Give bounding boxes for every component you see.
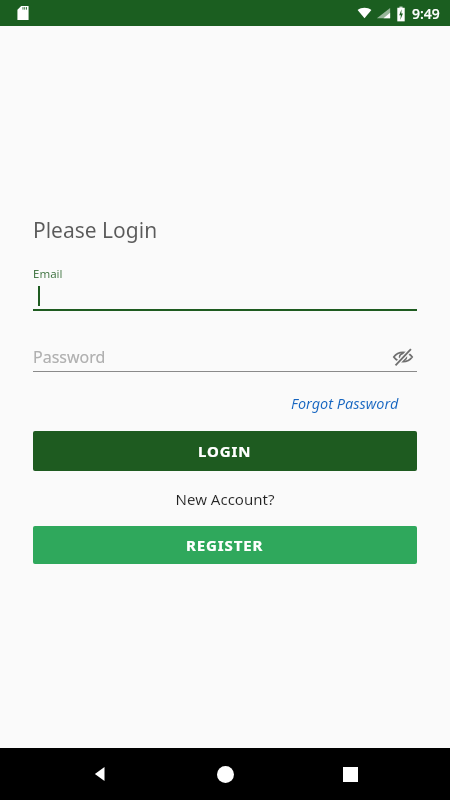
button[interactable]: Show password [389, 343, 417, 371]
staticText: 9:49 [412, 4, 440, 23]
button[interactable]: Forgot Password [291, 393, 399, 413]
button[interactable]: Recents [333, 757, 367, 791]
staticText: Password [33, 346, 106, 368]
staticText: Forgot Password [291, 393, 399, 413]
button[interactable]: Back [83, 757, 117, 791]
button[interactable]: REGISTER [33, 526, 417, 564]
button[interactable]: Email [33, 266, 417, 311]
button[interactable]: Home [207, 756, 243, 792]
button[interactable]: LOGIN [33, 431, 417, 471]
staticText: Email [33, 266, 63, 282]
staticText: New Account? [0, 489, 450, 509]
staticText: LOGIN [198, 441, 252, 461]
staticText: Please Login [33, 216, 158, 245]
staticText: REGISTER [186, 535, 264, 555]
button[interactable]: Password [33, 342, 417, 371]
